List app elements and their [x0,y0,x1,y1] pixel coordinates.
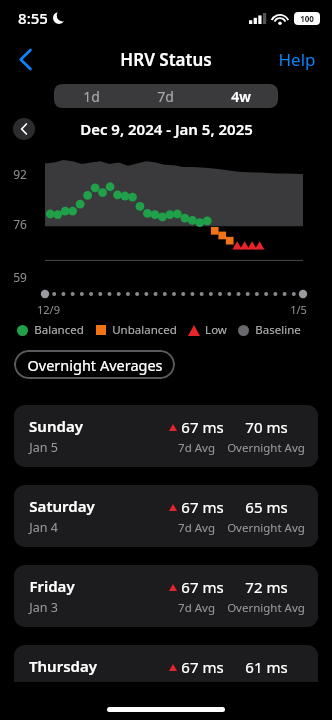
staticText: 12/9 [37,302,60,317]
staticText: 59 [13,269,27,285]
button[interactable]: 4w [203,84,278,108]
staticText: 65 ms [245,497,288,517]
staticText: Friday [29,576,75,596]
staticText: Low [205,322,227,338]
button[interactable]: Thursday [14,645,318,707]
staticText: 100 [300,13,314,24]
button[interactable]: Saturday [14,485,318,547]
staticText: 7d Avg [178,520,215,536]
button[interactable]: 1d [54,84,128,108]
staticText: 7d Avg [178,440,215,456]
button[interactable]: 7d [128,84,203,108]
staticText: Help [278,48,316,71]
staticText: Thursday [29,656,97,676]
staticText: Saturday [29,496,95,516]
staticText: HRV Status [120,48,212,71]
button[interactable]: Friday [14,565,318,627]
staticText: 7d Avg [178,600,215,616]
button[interactable]: Back [8,42,42,76]
staticText: 8:55 [18,8,48,28]
staticText: Jan 5 [29,439,58,456]
staticText: Jan 3 [29,599,58,616]
staticText: Overnight Avg [227,440,305,456]
button[interactable]: Previous period [13,118,35,140]
staticText: 70 ms [245,417,288,437]
staticText: 76 [13,216,27,232]
staticText: Sunday [29,416,83,436]
staticText: 7d [157,87,174,106]
staticText: Overnight Averages [27,355,163,375]
staticText: Unbalanced [112,322,177,338]
button[interactable]: Sunday [14,405,318,467]
staticText: Overnight Avg [227,680,305,696]
staticText: 92 [13,166,27,182]
staticText: 1/5 [290,302,307,317]
staticText: 67 ms [181,497,224,517]
staticText: 61 ms [245,657,288,677]
button[interactable]: Overnight Averages [14,350,175,379]
staticText: Dec 9, 2024 - Jan 5, 2025 [80,119,253,139]
staticText: Balanced [34,322,84,338]
staticText: 67 ms [181,577,224,597]
staticText: 4w [231,87,251,106]
staticText: 67 ms [181,657,224,677]
staticText: Baseline [255,322,301,338]
staticText: 72 ms [245,577,288,597]
staticText: 7d Avg [178,680,215,696]
staticText: 1d [83,87,100,106]
staticText: 67 ms [181,417,224,437]
staticText: Jan 2 [29,679,58,696]
staticText: Overnight Avg [227,520,305,536]
staticText: Overnight Avg [227,600,305,616]
button[interactable]: Help [274,44,320,75]
staticText: Jan 4 [29,519,58,536]
